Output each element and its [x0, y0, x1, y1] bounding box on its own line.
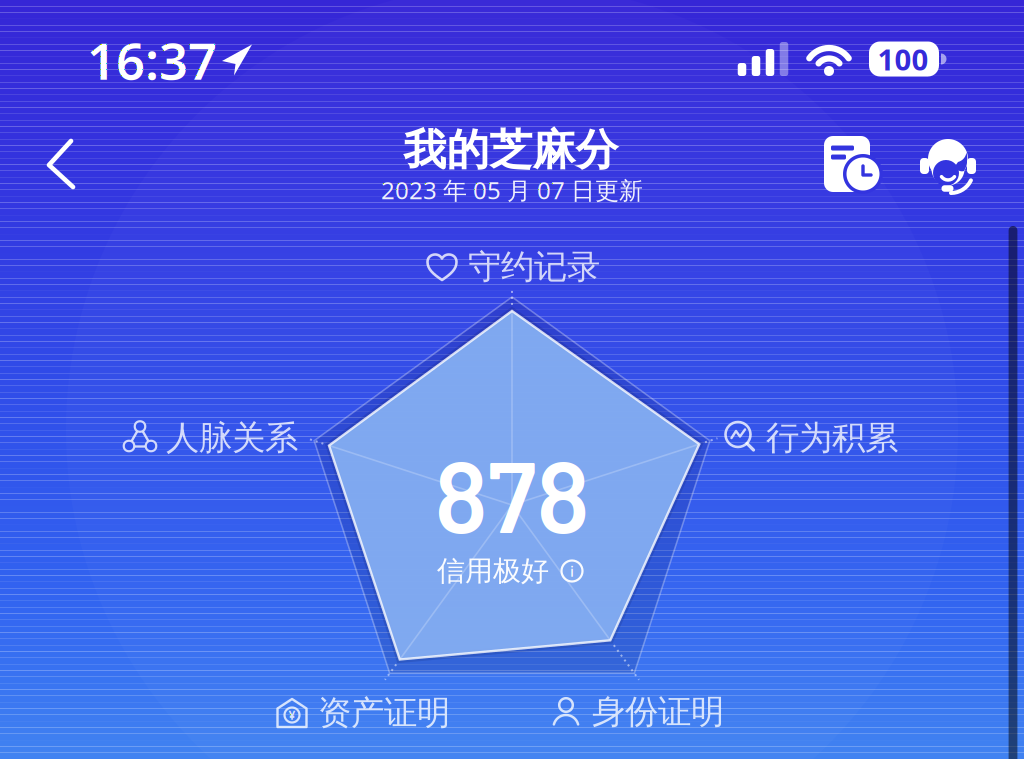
staticText: 2023 年 05 月 07 日更新	[381, 174, 643, 206]
button[interactable]: 信用极好	[437, 554, 583, 588]
staticText: 我的芝麻分	[403, 124, 618, 176]
staticText: 身份证明	[592, 691, 724, 732]
button[interactable]: 守约记录	[424, 246, 600, 287]
button[interactable]: Records	[821, 136, 881, 196]
staticText: 878	[434, 433, 589, 553]
staticText: 守约记录	[468, 246, 600, 287]
staticText: 100	[877, 39, 928, 78]
staticText: ¥	[288, 707, 295, 723]
button[interactable]: 身份证明	[548, 691, 724, 732]
button[interactable]: 行为积累	[722, 417, 898, 458]
staticText: 人脉关系	[166, 417, 298, 458]
button[interactable]: Back	[48, 137, 78, 191]
button[interactable]: 人脉关系	[122, 417, 298, 458]
staticText: 行为积累	[766, 417, 898, 458]
staticText: 16:37	[87, 26, 217, 94]
button[interactable]: ¥	[274, 692, 450, 733]
staticText: 资产证明	[318, 692, 450, 733]
button[interactable]: Customer Service	[918, 136, 978, 196]
staticText: 信用极好	[437, 554, 549, 588]
staticText: i	[570, 561, 574, 581]
